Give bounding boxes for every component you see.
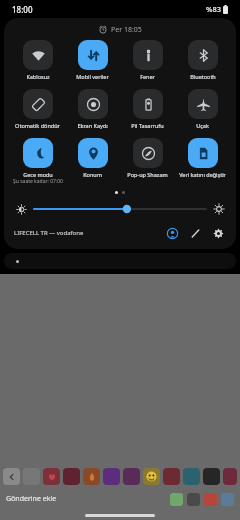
- button[interactable]: Auto brightness: [212, 202, 226, 216]
- button[interactable]: Delete: [204, 493, 217, 506]
- button[interactable]: Back: [3, 468, 20, 485]
- button[interactable]: User: [165, 226, 180, 241]
- button[interactable]: Sticker 10: [223, 468, 237, 485]
- staticText: Bluetooth: [190, 73, 216, 80]
- button[interactable]: Otomatik döndür: [10, 89, 65, 129]
- button[interactable]: Bluetooth: [175, 40, 230, 80]
- staticText: %83: [206, 4, 221, 14]
- button[interactable]: Gallery: [170, 493, 183, 506]
- button[interactable]: Sticker 1: [43, 468, 60, 485]
- staticText: 18:00: [12, 4, 33, 15]
- button[interactable]: [34, 202, 206, 216]
- button[interactable]: Sticker 5: [123, 468, 140, 485]
- button[interactable]: Brightness low: [14, 202, 28, 216]
- button[interactable]: Sticker 4: [103, 468, 120, 485]
- button[interactable]: [4, 253, 236, 269]
- staticText: Fener: [140, 73, 155, 80]
- button[interactable]: Sticker 8: [183, 468, 200, 485]
- button[interactable]: Camera: [187, 493, 200, 506]
- button[interactable]: Fener: [120, 40, 175, 80]
- button[interactable]: Sticker 7: [163, 468, 180, 485]
- staticText: Pop-up Shazam: [127, 171, 168, 178]
- button[interactable]: Uçak: [175, 89, 230, 129]
- button[interactable]: Mention: [221, 493, 234, 506]
- staticText: Gönderine ekle: [6, 494, 57, 504]
- staticText: Otomatik döndür: [15, 122, 60, 129]
- staticText: Gece modu: [23, 171, 53, 178]
- button[interactable]: Edit: [188, 226, 203, 241]
- staticText: Pil Tasarrufu: [131, 122, 164, 129]
- staticText: Konum: [83, 171, 102, 178]
- button[interactable]: Pop-up Shazam: [120, 138, 175, 178]
- button[interactable]: Sticker 2: [63, 468, 80, 485]
- button[interactable]: Sticker 3: [83, 468, 100, 485]
- staticText: Per 18:05: [111, 25, 142, 35]
- staticText: Kablosuz: [26, 73, 50, 80]
- button[interactable]: Pil Tasarrufu: [120, 89, 175, 129]
- staticText: Uçak: [196, 122, 209, 129]
- staticText: Veri katını değiştir: [179, 171, 226, 178]
- button[interactable]: Mobil veriler: [65, 40, 120, 80]
- staticText: Şu saate kadar: 07:00: [13, 178, 63, 185]
- staticText: Mobil veriler: [76, 73, 109, 80]
- staticText: LIFECELL TR — vodafone: [14, 229, 84, 237]
- button[interactable]: Sticker 9: [203, 468, 220, 485]
- button[interactable]: Settings: [211, 226, 226, 241]
- button[interactable]: Gece modu: [10, 138, 65, 185]
- staticText: Ekran Kaydı: [77, 122, 108, 129]
- button[interactable]: Konum: [65, 138, 120, 178]
- button[interactable]: Veri katını değiştir: [175, 138, 230, 178]
- button[interactable]: Kablosuz: [10, 40, 65, 80]
- button[interactable]: Ekran Kaydı: [65, 89, 120, 129]
- button[interactable]: Sticker 6: [143, 468, 160, 485]
